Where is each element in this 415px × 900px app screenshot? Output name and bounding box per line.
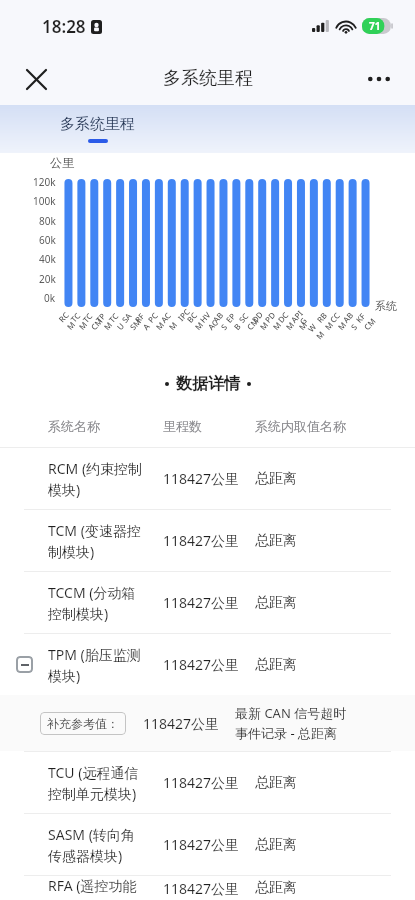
staticText: DDM — [249, 308, 274, 332]
button[interactable]: RFA (遥控功能 — [0, 876, 415, 900]
staticText: 总距离 — [255, 879, 297, 897]
staticText: 控制模块) — [48, 604, 109, 623]
staticText: 传感器模块) — [48, 846, 123, 865]
staticText: ABS — [340, 308, 365, 332]
button[interactable]: TCM (变速器控 — [0, 510, 415, 571]
staticText: 118427公里 — [163, 835, 240, 854]
staticText: RBM — [314, 308, 339, 332]
staticText: 事件记录 - 总距离 — [235, 724, 337, 742]
staticText: 118427公里 — [163, 773, 240, 792]
staticText: TPM — [93, 308, 118, 332]
staticText: 公里 — [50, 155, 74, 170]
staticText: PDM — [262, 308, 287, 332]
staticText: 118427公里 — [163, 879, 240, 898]
staticText: TCU (远程通信 — [48, 763, 139, 782]
staticText: 补充参考值： — [47, 716, 119, 731]
staticText: 总距离 — [255, 656, 297, 674]
staticText: GWM — [297, 310, 330, 341]
staticText: TCU — [106, 308, 131, 332]
staticText: 80k — [39, 214, 56, 228]
button[interactable]: More options — [355, 55, 403, 103]
staticText: 数据详情 — [176, 374, 240, 394]
staticText: 总距离 — [255, 774, 297, 792]
staticText: TCCM (分动箱 — [48, 583, 136, 602]
staticText: ABS — [210, 308, 235, 332]
staticText: RCM — [56, 308, 80, 332]
staticText: 系统 — [375, 299, 397, 313]
staticText: 模块) — [48, 480, 81, 499]
staticText: 控制单元模块) — [48, 784, 137, 803]
staticText: 118427公里 — [163, 593, 240, 612]
staticText: SASM — [119, 308, 144, 332]
staticText: 系统名称 — [48, 418, 100, 434]
staticText: 60k — [39, 233, 56, 247]
staticText: 118427公里 — [163, 655, 240, 674]
staticText: RFA (遥控功能 — [48, 876, 137, 895]
button[interactable]: Close — [12, 55, 60, 103]
staticText: 118427公里 — [163, 531, 240, 550]
staticText: 制模块) — [48, 542, 95, 561]
staticText: 里程数 — [163, 418, 202, 434]
staticText: 模块) — [48, 666, 81, 685]
staticText: 120k — [33, 175, 56, 189]
staticText: 系统内取值名称 — [255, 418, 346, 434]
staticText: 100k — [33, 194, 56, 208]
staticText: IPC — [175, 306, 192, 323]
staticText: TPM (胎压监测 — [48, 645, 141, 664]
staticText: KFCM — [353, 308, 378, 332]
staticText: 多系统里程 — [163, 67, 253, 90]
staticText: 总距离 — [255, 532, 297, 550]
button[interactable]: 补充参考值： — [0, 695, 415, 751]
staticText: 总距离 — [255, 836, 297, 854]
button[interactable]: SASM (转向角 — [0, 814, 415, 875]
staticText: PCM — [145, 308, 170, 332]
button[interactable]: TCCM (分动箱 — [0, 572, 415, 633]
staticText: 118427公里 — [163, 469, 240, 488]
staticText: 最新 CAN 信号超时 — [235, 704, 347, 722]
staticText: TCCM — [80, 308, 105, 332]
other: Collapse — [0, 634, 48, 695]
staticText: 71 — [369, 19, 381, 33]
staticText: CCM — [327, 308, 352, 332]
staticText: 总距离 — [255, 470, 297, 488]
staticText: 多系统里程 — [60, 115, 135, 134]
staticText: 118427公里 — [143, 714, 220, 733]
staticText: 20k — [39, 272, 56, 286]
staticText: RFA — [132, 308, 157, 332]
staticText: TCM — [68, 308, 92, 332]
button[interactable]: RCM (约束控制 — [0, 448, 415, 509]
staticText: TCM (变速器控 — [48, 521, 141, 540]
staticText: 0k — [44, 291, 56, 305]
button[interactable]: TCU (远程通信 — [0, 752, 415, 813]
staticText: SASM (转向角 — [48, 825, 135, 844]
staticText: DCM — [275, 308, 300, 332]
staticText: EPB — [223, 308, 248, 332]
button[interactable]: Collapse — [0, 634, 415, 695]
staticText: APIM — [288, 308, 313, 332]
staticText: SCCM — [236, 308, 261, 332]
staticText: RCM (约束控制 — [48, 459, 143, 478]
staticText: 18:28 — [42, 15, 86, 38]
staticText: HVAC — [197, 308, 222, 332]
staticText: BCM — [184, 308, 209, 332]
button[interactable]: 多系统里程 — [60, 115, 135, 143]
staticText: 总距离 — [255, 594, 297, 612]
staticText: ACM — [158, 308, 183, 332]
staticText: 40k — [39, 252, 56, 266]
